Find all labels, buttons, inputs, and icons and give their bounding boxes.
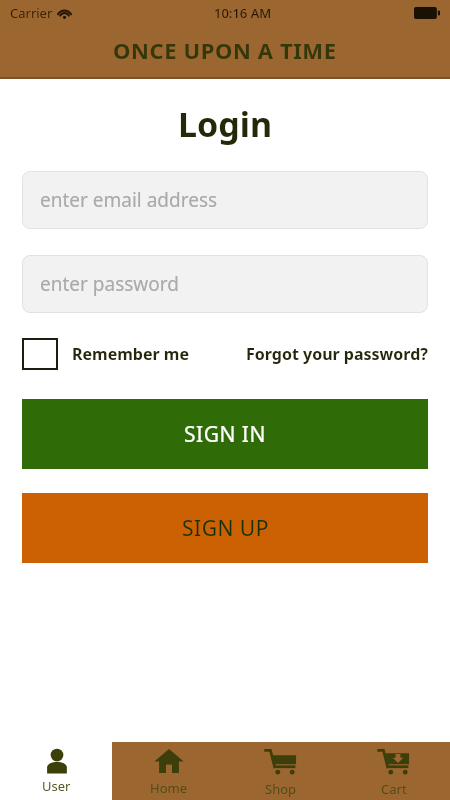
staticText: SIGN UP xyxy=(182,514,269,543)
other: Cart xyxy=(378,745,410,777)
staticText: ONCE UPON A TIME xyxy=(113,35,337,65)
staticText: Cart xyxy=(381,780,407,798)
button[interactable]: Forgot your password? xyxy=(246,343,428,365)
button[interactable]: Home xyxy=(112,742,224,800)
staticText: enter email address xyxy=(40,187,218,213)
staticText: User xyxy=(42,777,71,795)
staticText: Home xyxy=(150,779,187,797)
other: User xyxy=(44,748,70,774)
button[interactable]: enter password xyxy=(22,255,428,313)
staticText: Shop xyxy=(265,780,297,798)
button[interactable]: SIGN IN xyxy=(22,399,428,469)
button[interactable]: Shop xyxy=(224,742,337,800)
button[interactable]: SIGN UP xyxy=(22,493,428,563)
button[interactable]: Remember me xyxy=(72,343,189,365)
other: Home xyxy=(154,746,184,776)
button[interactable]: Cart xyxy=(337,742,450,800)
button[interactable]: enter email address xyxy=(22,171,428,229)
staticText: enter password xyxy=(40,271,179,297)
staticText: Carrier xyxy=(10,4,53,22)
staticText: SIGN IN xyxy=(184,420,266,449)
button[interactable]: Remember me checkbox xyxy=(22,338,58,370)
other: Shop xyxy=(265,745,297,777)
staticText: 10:16 AM xyxy=(214,4,272,22)
button[interactable]: User xyxy=(0,742,112,800)
staticText: Login xyxy=(0,101,450,147)
